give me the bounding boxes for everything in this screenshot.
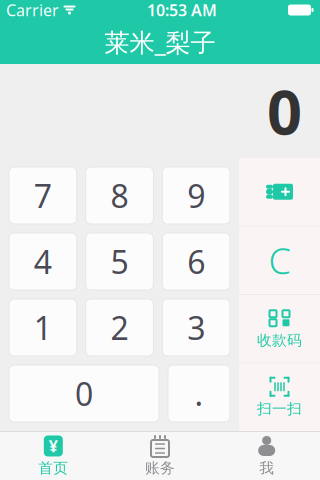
staticText: 首页 xyxy=(38,459,68,477)
staticText: 莱米_梨子 xyxy=(104,25,215,59)
staticText: 收款码 xyxy=(257,331,302,349)
staticText: 2 xyxy=(110,306,128,349)
button[interactable]: 扫一扫 xyxy=(239,363,320,431)
staticText: 7 xyxy=(34,174,52,217)
staticText: 1 xyxy=(34,306,52,349)
button[interactable]: 5 xyxy=(86,233,153,290)
button[interactable]: 收款码 xyxy=(239,295,320,362)
button[interactable]: Clear xyxy=(239,226,320,294)
button[interactable]: 6 xyxy=(162,233,230,290)
button[interactable]: 3 xyxy=(162,299,230,356)
staticText: 我 xyxy=(259,459,274,477)
staticText: 9 xyxy=(187,174,205,217)
staticText: 账务 xyxy=(145,459,175,477)
button[interactable]: 2 xyxy=(86,299,153,356)
staticText: 3 xyxy=(187,306,205,349)
staticText: . xyxy=(194,372,203,415)
staticText: 0 xyxy=(75,372,93,415)
button[interactable]: 1 xyxy=(9,299,77,356)
button[interactable]: 我 xyxy=(213,432,320,480)
button[interactable]: 8 xyxy=(86,167,153,224)
button[interactable]: 0 xyxy=(9,365,159,422)
staticText: 扫一扫 xyxy=(257,400,302,418)
button[interactable]: 账务 xyxy=(107,432,213,480)
staticText: 5 xyxy=(110,240,128,283)
button[interactable]: 7 xyxy=(9,167,77,224)
staticText: C xyxy=(268,236,290,284)
staticText: ¥ xyxy=(49,435,58,457)
button[interactable]: . xyxy=(168,365,230,422)
staticText: 8 xyxy=(110,174,128,217)
button[interactable]: 4 xyxy=(9,233,77,290)
staticText: 6 xyxy=(187,240,205,283)
staticText: 4 xyxy=(34,240,52,283)
staticText: 10:53 AM xyxy=(147,0,217,21)
button[interactable]: 9 xyxy=(162,167,230,224)
button[interactable]: Delete xyxy=(239,158,320,225)
staticText: 0 xyxy=(267,70,302,152)
staticText: Carrier xyxy=(6,0,59,21)
button[interactable]: ¥ xyxy=(0,432,107,480)
